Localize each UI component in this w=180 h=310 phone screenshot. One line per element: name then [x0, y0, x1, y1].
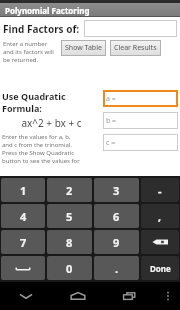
staticText: c =: [106, 138, 116, 148]
button[interactable]: Space: [1, 256, 45, 280]
button[interactable]: 1: [1, 178, 45, 202]
button[interactable]: [84, 20, 177, 37]
button[interactable]: Recent apps: [104, 282, 156, 310]
button[interactable]: 4: [1, 204, 45, 228]
staticText: Polynomial Factoring: [5, 5, 90, 16]
staticText: 7: [20, 235, 27, 250]
button[interactable]: Delete: [141, 230, 179, 254]
button[interactable]: Clear Results: [114, 40, 157, 56]
staticText: Find Factors of:: [3, 22, 80, 36]
staticText: Done: [150, 263, 171, 274]
button[interactable]: ,: [141, 204, 179, 228]
button[interactable]: 8: [47, 230, 92, 254]
button[interactable]: Show Table: [65, 40, 102, 56]
staticText: Enter a number and its factors will be r…: [3, 40, 61, 64]
button[interactable]: 2: [47, 178, 92, 202]
staticText: 1: [20, 183, 27, 198]
button[interactable]: b =: [103, 112, 178, 129]
staticText: .: [115, 261, 119, 276]
button[interactable]: Polynomial Factoring: [0, 3, 180, 17]
button[interactable]: 9: [94, 230, 139, 254]
button[interactable]: More options: [156, 282, 180, 310]
button[interactable]: Home: [52, 282, 104, 310]
button[interactable]: Done: [141, 256, 179, 280]
staticText: Clear Results: [114, 43, 157, 53]
button[interactable]: 0: [47, 256, 92, 280]
staticText: Use Quadratic Formula:: [2, 90, 103, 114]
staticText: 5: [66, 209, 73, 224]
staticText: b =: [106, 116, 117, 126]
button[interactable]: .: [94, 256, 139, 280]
staticText: 9: [113, 235, 120, 250]
button[interactable]: c =: [103, 134, 178, 151]
staticText: -: [158, 183, 162, 198]
staticText: 2: [66, 183, 73, 198]
staticText: 3: [113, 183, 120, 198]
staticText: Show Table: [65, 43, 102, 53]
staticText: 0: [66, 261, 73, 276]
staticText: Enter the values for a, b, and c from th…: [2, 133, 80, 165]
staticText: ax^2 + bx + c: [0, 116, 103, 130]
button[interactable]: Back: [0, 282, 52, 310]
staticText: a =: [106, 94, 116, 104]
staticText: 8: [66, 235, 73, 250]
staticText: 6: [113, 209, 120, 224]
button[interactable]: a =: [103, 90, 178, 107]
button[interactable]: 7: [1, 230, 45, 254]
staticText: ,: [158, 209, 162, 224]
staticText: 4: [20, 209, 27, 224]
button[interactable]: 6: [94, 204, 139, 228]
button[interactable]: -: [141, 178, 179, 202]
button[interactable]: 5: [47, 204, 92, 228]
button[interactable]: 3: [94, 178, 139, 202]
